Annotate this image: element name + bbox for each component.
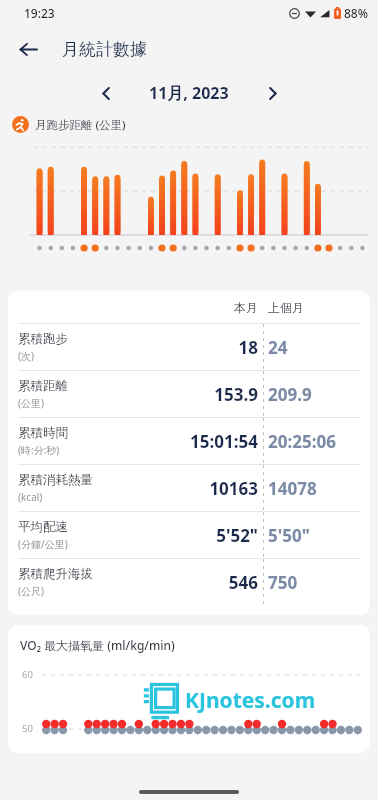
staticText: (公里) <box>18 396 44 410</box>
staticText: (kcal) <box>18 490 43 504</box>
staticText: 14078 <box>268 477 317 500</box>
button[interactable]: 累積爬升海拔 <box>18 559 360 605</box>
staticText: 209.9 <box>268 383 312 406</box>
staticText: (公尺) <box>18 584 44 598</box>
staticText: 546 <box>228 571 258 594</box>
staticText: (時:分:秒) <box>18 443 60 457</box>
staticText: 累積消耗熱量 <box>18 472 93 488</box>
staticText: 本月 <box>234 300 258 315</box>
staticText: 20:25:06 <box>268 430 336 453</box>
staticText: 10163 <box>209 477 258 500</box>
button[interactable]: 累積時間 <box>18 418 360 464</box>
staticText: 平均配速 <box>18 519 68 535</box>
staticText: 累積跑步 <box>18 331 68 347</box>
staticText: 18 <box>238 336 258 359</box>
staticText: 月跑步距離 (公里) <box>35 117 126 133</box>
button[interactable]: Back <box>8 29 48 69</box>
button[interactable]: 累積距離 <box>18 371 360 417</box>
button[interactable]: Next month <box>255 76 289 110</box>
staticText: 5'50" <box>268 524 310 547</box>
button[interactable]: 平均配速 <box>18 512 360 558</box>
staticText: 88% <box>344 5 368 21</box>
staticText: KJnotes.com <box>185 686 316 715</box>
staticText: (分鐘/公里) <box>18 537 68 551</box>
staticText: VO₂ 最大攝氧量 (ml/kg/min) <box>20 637 175 653</box>
staticText: 50 <box>22 722 33 735</box>
staticText: 累積時間 <box>18 425 68 441</box>
staticText: 月統計數據 <box>62 39 147 60</box>
staticText: 5'52" <box>216 524 258 547</box>
staticText: 11月, 2023 <box>149 82 229 104</box>
staticText: 24 <box>268 336 288 359</box>
staticText: 153.9 <box>214 383 258 406</box>
button[interactable]: 累積跑步 <box>18 324 360 370</box>
staticText: 上個月 <box>268 300 304 315</box>
staticText: 60 <box>22 668 33 681</box>
staticText: 累積距離 <box>18 378 68 394</box>
staticText: (次) <box>18 349 34 363</box>
staticText: 19:23 <box>24 5 55 21</box>
staticText: 750 <box>268 571 298 594</box>
staticText: 15:01:54 <box>190 430 258 453</box>
button[interactable]: 累積消耗熱量 <box>18 465 360 511</box>
staticText: 累積爬升海拔 <box>18 566 93 582</box>
button[interactable]: Previous month <box>89 76 123 110</box>
